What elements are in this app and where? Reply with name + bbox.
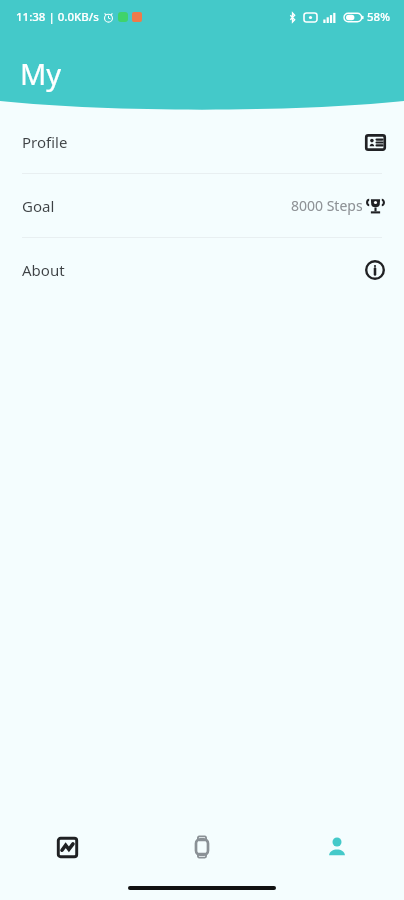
staticText: 11:38 | 0.0KB/s [16, 9, 99, 25]
staticText: My [20, 54, 62, 93]
button[interactable]: Goal [0, 174, 404, 237]
button[interactable]: Profile [0, 110, 404, 173]
staticText: Profile [22, 132, 68, 152]
staticText: 58% [367, 9, 390, 25]
button[interactable]: Profile tab [269, 818, 404, 876]
button[interactable]: Watch [134, 818, 269, 876]
button[interactable]: Statistics [0, 818, 134, 876]
staticText: 8000 Steps [291, 196, 363, 215]
staticText: About [22, 260, 65, 280]
button[interactable]: About [0, 238, 404, 301]
staticText: Goal [22, 196, 55, 216]
